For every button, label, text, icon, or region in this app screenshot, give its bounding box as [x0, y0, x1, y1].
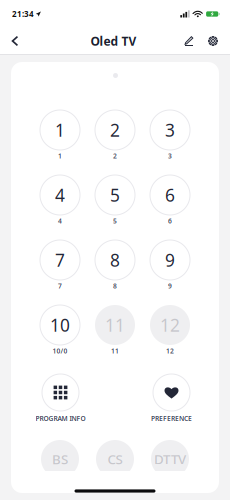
staticText: 6: [165, 183, 175, 206]
button[interactable]: 8: [89, 240, 141, 292]
staticText: PROGRAM INFO: [35, 414, 85, 423]
button[interactable]: PREFERENCE: [121, 372, 221, 424]
staticText: 1: [55, 118, 65, 141]
staticText: PREFERENCE: [151, 414, 192, 423]
staticText: 9: [168, 282, 172, 290]
staticText: 6: [168, 217, 172, 225]
button[interactable]: 3: [144, 110, 196, 162]
staticText: 3: [168, 152, 172, 160]
staticText: 10: [50, 313, 70, 336]
staticText: 4: [55, 183, 65, 206]
staticText: 2: [113, 152, 117, 160]
staticText: DTTV: [154, 450, 186, 468]
button[interactable]: BS: [41, 440, 79, 478]
staticText: 11: [105, 313, 125, 336]
button[interactable]: 4: [34, 175, 86, 227]
staticText: Oled TV: [90, 33, 136, 49]
button[interactable]: 10: [34, 305, 86, 357]
button[interactable]: DTTV: [151, 440, 189, 478]
staticText: 5: [113, 217, 117, 225]
button[interactable]: 6: [144, 175, 196, 227]
button[interactable]: 5: [89, 175, 141, 227]
button[interactable]: PROGRAM INFO: [10, 372, 110, 424]
staticText: 1: [58, 152, 62, 160]
button[interactable]: Edit: [179, 30, 199, 52]
staticText: 9: [165, 248, 175, 271]
button[interactable]: Settings: [203, 30, 223, 52]
staticText: 21:34: [12, 9, 34, 19]
staticText: 7: [55, 248, 65, 271]
button[interactable]: 2: [89, 110, 141, 162]
staticText: 8: [110, 248, 120, 271]
staticText: 3: [165, 118, 175, 141]
button[interactable]: 9: [144, 240, 196, 292]
button[interactable]: Back: [5, 30, 25, 52]
staticText: 4: [58, 217, 62, 225]
staticText: 12: [160, 313, 180, 336]
button[interactable]: CS: [96, 440, 134, 478]
staticText: BS: [52, 450, 68, 468]
staticText: 7: [58, 282, 62, 290]
button[interactable]: 7: [34, 240, 86, 292]
button[interactable]: 12: [144, 305, 196, 357]
staticText: 10/0: [52, 347, 67, 355]
staticText: 5: [110, 183, 120, 206]
staticText: 11: [111, 347, 119, 355]
staticText: 8: [113, 282, 117, 290]
staticText: 12: [166, 347, 174, 355]
button[interactable]: 11: [89, 305, 141, 357]
staticText: CS: [107, 450, 122, 468]
staticText: 2: [110, 118, 120, 141]
button[interactable]: 1: [34, 110, 86, 162]
